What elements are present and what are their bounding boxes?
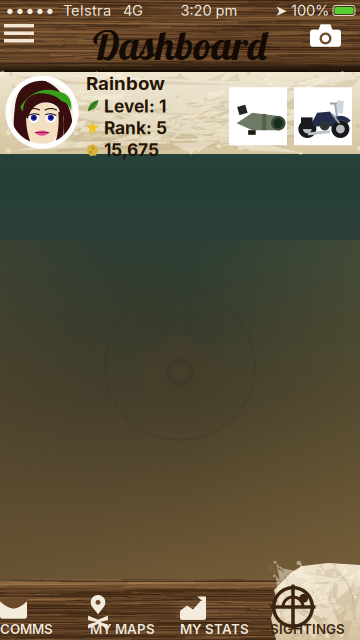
staticText: Telstra 4G <box>55 2 143 19</box>
staticText: ••••• <box>5 0 55 21</box>
button[interactable]: COMMS <box>0 562 90 640</box>
staticText: MY MAPS <box>90 621 155 637</box>
button[interactable]: SIGHTINGS <box>270 562 360 640</box>
staticText: 3:20 pm <box>180 2 237 19</box>
staticText: Dashboard <box>91 20 269 70</box>
button[interactable]: MY STATS <box>180 562 270 640</box>
staticText: Level: 1 <box>104 96 166 117</box>
staticText: MY STATS <box>180 621 249 637</box>
staticText: COMMS <box>0 621 53 637</box>
button[interactable]: Motorcycle <box>294 87 352 145</box>
button[interactable]: Camera <box>310 24 356 70</box>
button[interactable]: Profile <box>8 78 80 154</box>
staticText: ➤ 100% <box>275 2 333 19</box>
button[interactable]: Spotting scope <box>229 87 287 145</box>
button[interactable]: Menu <box>4 24 50 70</box>
staticText: Rainbow <box>86 72 165 95</box>
staticText: SIGHTINGS <box>270 621 345 637</box>
staticText: Rank: 5 <box>104 118 167 139</box>
staticText: 15,675 <box>104 139 159 160</box>
button[interactable]: MY MAPS <box>90 562 180 640</box>
